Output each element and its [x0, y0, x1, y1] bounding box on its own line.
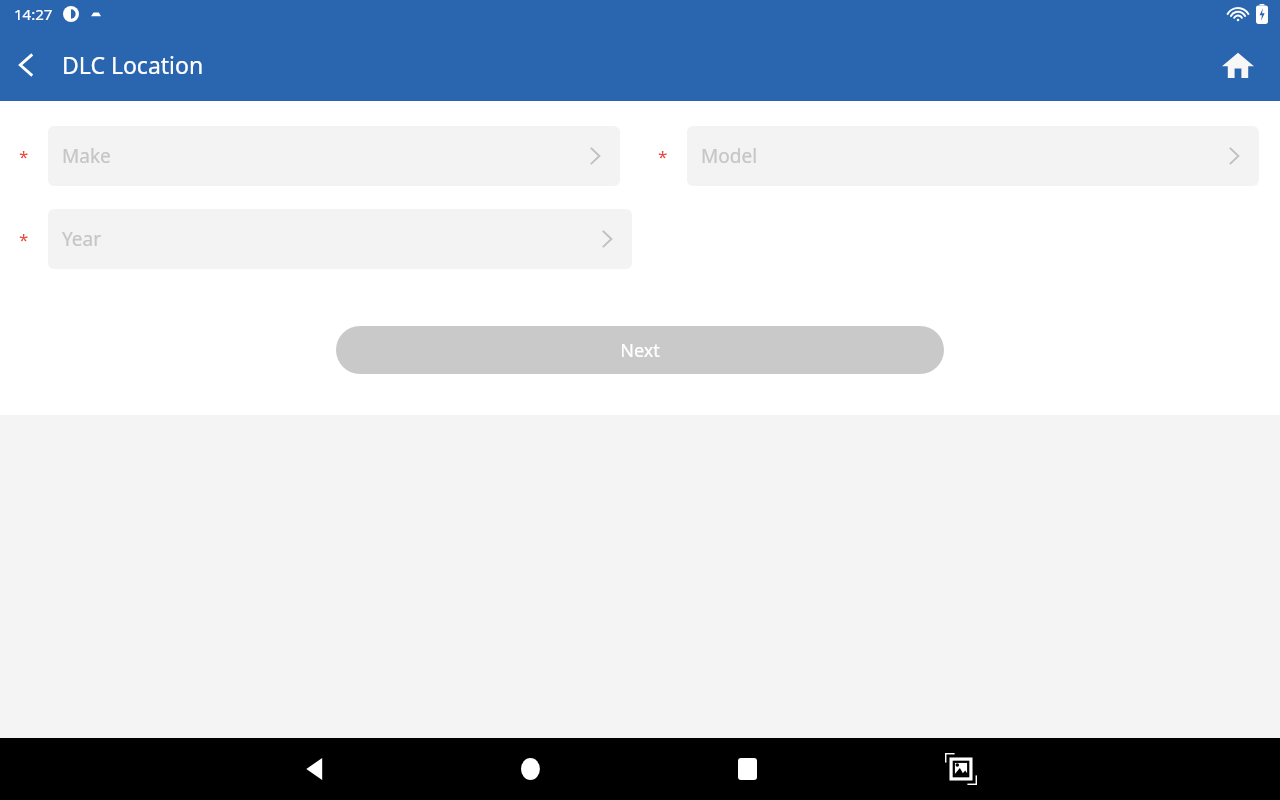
button[interactable]: Make: [48, 126, 620, 186]
button[interactable]: Back: [2, 41, 50, 89]
button[interactable]: Year: [48, 209, 632, 269]
button[interactable]: Home: [1210, 37, 1266, 93]
staticText: Year: [62, 226, 102, 252]
staticText: DLC Location: [62, 49, 204, 80]
button[interactable]: Recent apps: [717, 739, 777, 799]
button[interactable]: Model: [687, 126, 1259, 186]
staticText: *: [658, 145, 668, 168]
staticText: Model: [701, 143, 758, 169]
staticText: *: [19, 228, 29, 251]
staticText: 14:27: [14, 4, 53, 24]
button[interactable]: Home: [502, 739, 562, 799]
button[interactable]: Next: [336, 326, 944, 374]
staticText: Next: [620, 338, 660, 363]
staticText: Make: [62, 143, 111, 169]
button[interactable]: Screenshot: [931, 739, 991, 799]
staticText: *: [19, 145, 29, 168]
button[interactable]: Back: [286, 739, 346, 799]
